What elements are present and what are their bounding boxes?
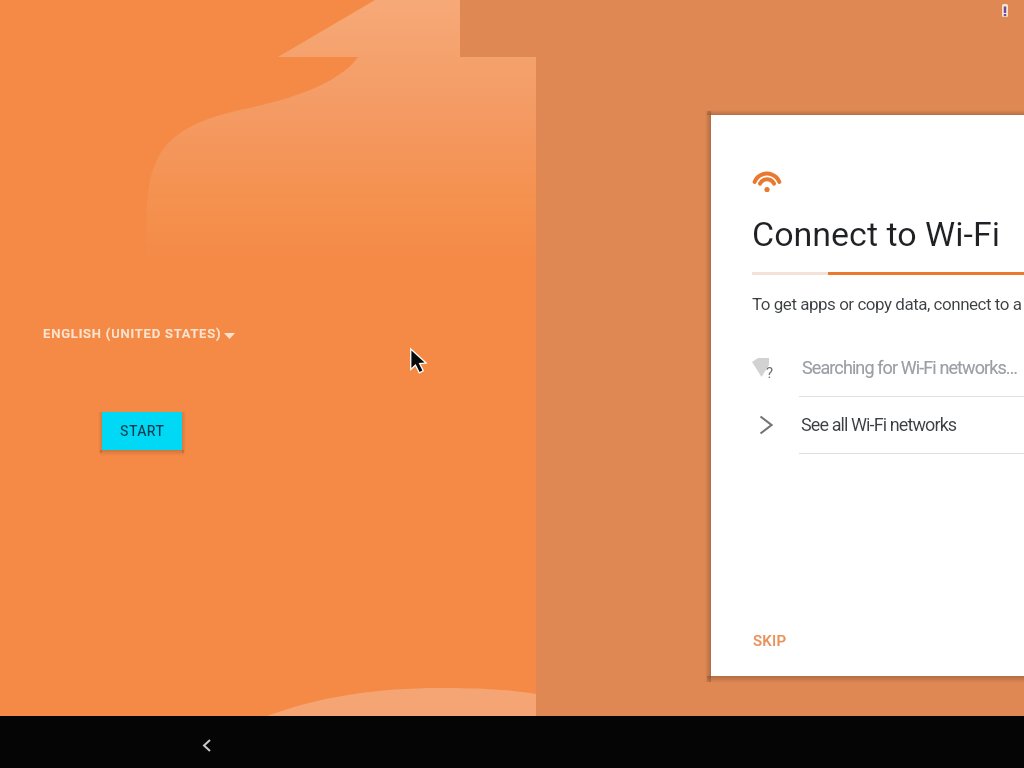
- staticText: Connect to Wi-Fi: [752, 214, 1000, 254]
- button[interactable]: START: [102, 412, 182, 450]
- button[interactable]: Back: [181, 716, 233, 768]
- staticText: Searching for Wi-Fi networks…: [802, 357, 1018, 378]
- staticText: ?: [766, 364, 774, 382]
- staticText: START: [120, 423, 165, 439]
- button[interactable]: ENGLISH (UNITED STATES): [38, 318, 245, 349]
- staticText: SKIP: [753, 632, 787, 650]
- button[interactable]: ?: [711, 339, 1024, 396]
- staticText: To get apps or copy data, connect to a W…: [752, 294, 1024, 314]
- staticText: See all Wi-Fi networks: [801, 414, 957, 435]
- staticText: ENGLISH (UNITED STATES): [43, 326, 222, 341]
- button[interactable]: SKIP: [739, 620, 801, 662]
- button[interactable]: See all Wi-Fi networks: [711, 396, 1024, 453]
